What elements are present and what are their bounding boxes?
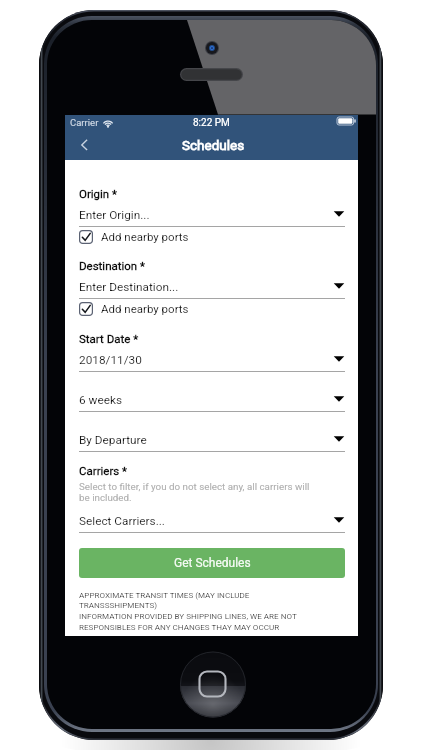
button[interactable]: By Departure	[79, 431, 345, 452]
staticText: Enter Origin...	[79, 208, 150, 222]
button[interactable]: Add nearby ports	[79, 227, 345, 247]
staticText: Carriers *	[79, 464, 128, 477]
staticText: Carrier	[70, 117, 99, 128]
staticText: Start Date *	[79, 332, 139, 345]
button[interactable]: Select Carriers...	[79, 512, 345, 533]
staticText: Enter Destination...	[79, 280, 179, 294]
staticText: Destination *	[79, 259, 146, 272]
staticText: Select to filter, if you do not select a…	[79, 481, 310, 503]
staticText: By Departure	[79, 433, 147, 447]
staticText: Origin *	[79, 187, 118, 200]
button[interactable]: Enter Origin...	[79, 206, 345, 227]
button[interactable]: 6 weeks	[79, 391, 345, 412]
staticText: Select Carriers...	[79, 514, 165, 528]
button[interactable]: Add nearby ports	[79, 299, 345, 319]
button[interactable]: Get Schedules	[79, 548, 345, 578]
button[interactable]: Back	[69, 134, 99, 160]
staticText: 8:22 PM	[193, 117, 230, 129]
button[interactable]: 2018/11/30	[79, 351, 345, 372]
button[interactable]: Enter Destination...	[79, 278, 345, 299]
staticText: 6 weeks	[79, 393, 122, 407]
staticText: 2018/11/30	[79, 353, 142, 367]
staticText: Get Schedules	[174, 556, 251, 570]
staticText: Add nearby ports	[101, 230, 189, 243]
staticText: APPROXIMATE TRANSIT TIMES (MAY INCLUDE T…	[79, 590, 297, 632]
staticText: Add nearby ports	[101, 302, 189, 315]
staticText: Schedules	[182, 137, 245, 153]
